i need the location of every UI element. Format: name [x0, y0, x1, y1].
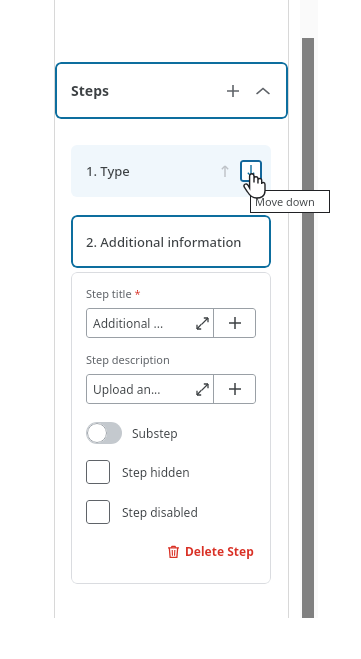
staticText: Additional ...: [93, 315, 164, 331]
staticText: Step description: [86, 352, 170, 367]
button[interactable]: 2. Additional information: [71, 215, 271, 268]
staticText: Step title *: [86, 286, 141, 301]
button[interactable]: Steps: [55, 62, 288, 119]
button[interactable]: Upload an...: [86, 374, 213, 404]
button[interactable]: Collapse: [252, 80, 274, 102]
button[interactable]: Step hidden: [86, 460, 256, 484]
staticText: Step disabled: [122, 504, 198, 520]
button[interactable]: Step disabled: [86, 500, 256, 524]
staticText: Substep: [132, 425, 178, 441]
staticText: Move down: [255, 194, 315, 209]
button[interactable]: Move up: [214, 160, 236, 182]
button[interactable]: 1. Type: [71, 145, 271, 197]
staticText: Upload an...: [93, 381, 161, 397]
staticText: 2. Additional information: [86, 233, 242, 251]
staticText: Step hidden: [122, 464, 190, 480]
button[interactable]: Add: [214, 308, 256, 338]
button[interactable]: Delete Step: [165, 541, 256, 561]
staticText: Delete Step: [185, 543, 254, 559]
button[interactable]: Additional ...: [86, 308, 213, 338]
button[interactable]: Substep: [86, 422, 256, 444]
staticText: 1. Type: [86, 162, 130, 180]
button[interactable]: Add: [214, 374, 256, 404]
button[interactable]: Add step: [222, 80, 244, 102]
button[interactable]: Move down: [240, 160, 262, 182]
staticText: Steps: [71, 81, 110, 100]
